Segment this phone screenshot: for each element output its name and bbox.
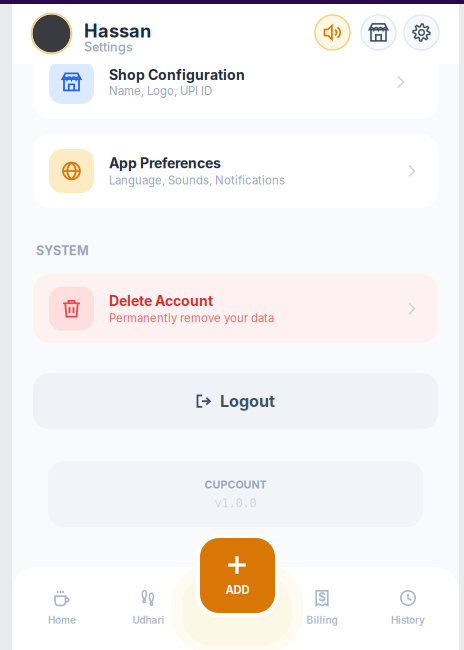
- staticText: Udhari: [132, 614, 164, 626]
- button[interactable]: App Preferences: [33, 134, 438, 208]
- staticText: App Preferences: [109, 155, 221, 172]
- staticText: Home: [48, 614, 76, 626]
- button[interactable]: Add: [196, 534, 279, 617]
- staticText: Name, Logo, UPI ID: [109, 84, 212, 98]
- button[interactable]: History: [370, 584, 445, 644]
- button[interactable]: Settings: [404, 15, 439, 50]
- staticText: Shop Configuration: [109, 66, 245, 83]
- staticText: Hassan: [84, 20, 151, 42]
- staticText: ADD: [225, 583, 249, 597]
- button[interactable]: Shop: [361, 15, 396, 50]
- staticText: Language, Sounds, Notifications: [109, 174, 285, 187]
- button[interactable]: Delete Account: [33, 274, 438, 343]
- button[interactable]: Udhari: [111, 584, 186, 644]
- staticText: Permanently remove your data: [109, 311, 274, 325]
- button[interactable]: $: [284, 584, 359, 644]
- staticText: History: [391, 614, 425, 626]
- staticText: v1.0.0: [214, 496, 256, 510]
- staticText: Billing: [306, 614, 337, 626]
- button[interactable]: Logout: [33, 373, 438, 429]
- staticText: SYSTEM: [36, 243, 89, 258]
- staticText: Logout: [220, 391, 275, 411]
- staticText: Delete Account: [109, 292, 213, 309]
- button[interactable]: Sound: [315, 15, 350, 50]
- staticText: $: [318, 590, 326, 604]
- staticText: Settings: [84, 39, 133, 55]
- button[interactable]: Home: [24, 584, 99, 644]
- staticText: CUPCOUNT: [204, 478, 266, 491]
